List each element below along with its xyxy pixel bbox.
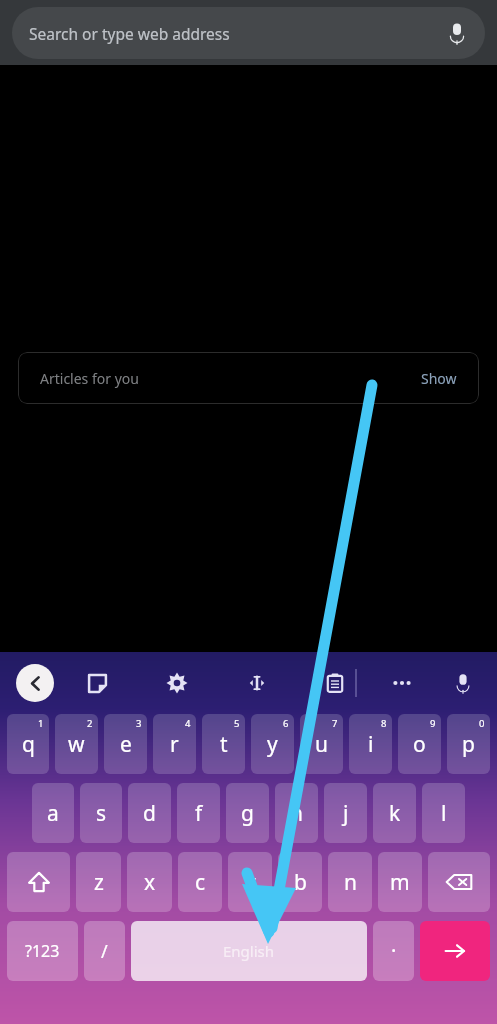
staticText: 2 (87, 717, 93, 730)
button[interactable]: Settings (160, 666, 194, 700)
button[interactable]: i (349, 714, 392, 774)
button[interactable]: a (32, 783, 74, 843)
staticText: i (368, 730, 374, 759)
button[interactable]: l (422, 783, 465, 843)
staticText: q (22, 730, 35, 759)
button[interactable]: . (373, 921, 414, 981)
button[interactable]: n (328, 852, 372, 912)
button[interactable]: Backspace (428, 852, 490, 912)
staticText: 8 (381, 717, 387, 730)
staticText: p (462, 730, 475, 759)
staticText: 3 (136, 717, 142, 730)
staticText: k (389, 799, 401, 828)
staticText: m (390, 868, 410, 897)
button[interactable]: Voice input (445, 665, 481, 701)
button[interactable]: j (324, 783, 367, 843)
button[interactable]: u (300, 714, 343, 774)
button[interactable]: Voice search (435, 11, 479, 55)
staticText: x (144, 868, 156, 897)
button[interactable]: h (275, 783, 318, 843)
button[interactable]: v (228, 852, 272, 912)
staticText: t (220, 730, 228, 759)
staticText: h (290, 799, 303, 828)
staticText: Search or type web address (29, 23, 230, 44)
button[interactable]: g (226, 783, 269, 843)
button[interactable]: Shift (7, 852, 70, 912)
button[interactable]: y (251, 714, 294, 774)
staticText: Articles for you (40, 369, 139, 388)
button[interactable]: Clipboard (318, 666, 352, 700)
button[interactable]: d (128, 783, 171, 843)
staticText: g (241, 799, 254, 828)
staticText: s (96, 799, 107, 828)
staticText: r (170, 730, 179, 759)
button[interactable]: o (398, 714, 441, 774)
button[interactable]: p (447, 714, 490, 774)
staticText: ?123 (25, 940, 60, 962)
staticText: y (267, 730, 278, 759)
staticText: b (294, 868, 307, 897)
button[interactable]: m (378, 852, 422, 912)
staticText: n (344, 868, 357, 897)
staticText: c (195, 868, 206, 897)
button[interactable]: k (373, 783, 416, 843)
button[interactable]: w (55, 714, 98, 774)
staticText: f (195, 799, 203, 828)
button[interactable]: q (7, 714, 49, 774)
staticText: 9 (430, 717, 436, 730)
staticText: a (47, 799, 59, 828)
staticText: 0 (479, 717, 485, 730)
button[interactable]: z (76, 852, 121, 912)
button[interactable]: English (131, 921, 367, 981)
staticText: o (413, 730, 426, 759)
staticText: u (315, 730, 328, 759)
button[interactable]: c (178, 852, 222, 912)
button[interactable]: Articles for you (18, 352, 479, 404)
button[interactable]: Stickers (80, 666, 114, 700)
staticText: e (120, 730, 132, 759)
staticText: / (101, 939, 108, 964)
staticText: v (245, 868, 256, 897)
staticText: Show (421, 369, 457, 388)
button[interactable]: f (177, 783, 220, 843)
staticText: j (343, 799, 349, 828)
staticText: w (68, 730, 85, 759)
staticText: 1 (38, 717, 44, 730)
staticText: 5 (234, 717, 240, 730)
button[interactable]: More options (385, 666, 419, 700)
button[interactable]: Enter (420, 921, 490, 981)
staticText: 4 (185, 717, 191, 730)
button[interactable]: s (80, 783, 122, 843)
button[interactable]: t (202, 714, 245, 774)
staticText: 7 (332, 717, 338, 730)
button[interactable]: Back (16, 664, 54, 702)
staticText: d (143, 799, 156, 828)
staticText: . (391, 931, 397, 958)
button[interactable]: e (104, 714, 147, 774)
button[interactable]: / (84, 921, 125, 981)
staticText: English (223, 941, 275, 961)
button[interactable]: Search or type web address (12, 7, 485, 59)
button[interactable]: x (127, 852, 172, 912)
staticText: l (441, 799, 447, 828)
button[interactable]: b (278, 852, 322, 912)
button[interactable]: ?123 (7, 921, 78, 981)
button[interactable]: r (153, 714, 196, 774)
button[interactable]: Text cursor (240, 666, 274, 700)
staticText: z (94, 868, 104, 897)
staticText: 6 (283, 717, 289, 730)
